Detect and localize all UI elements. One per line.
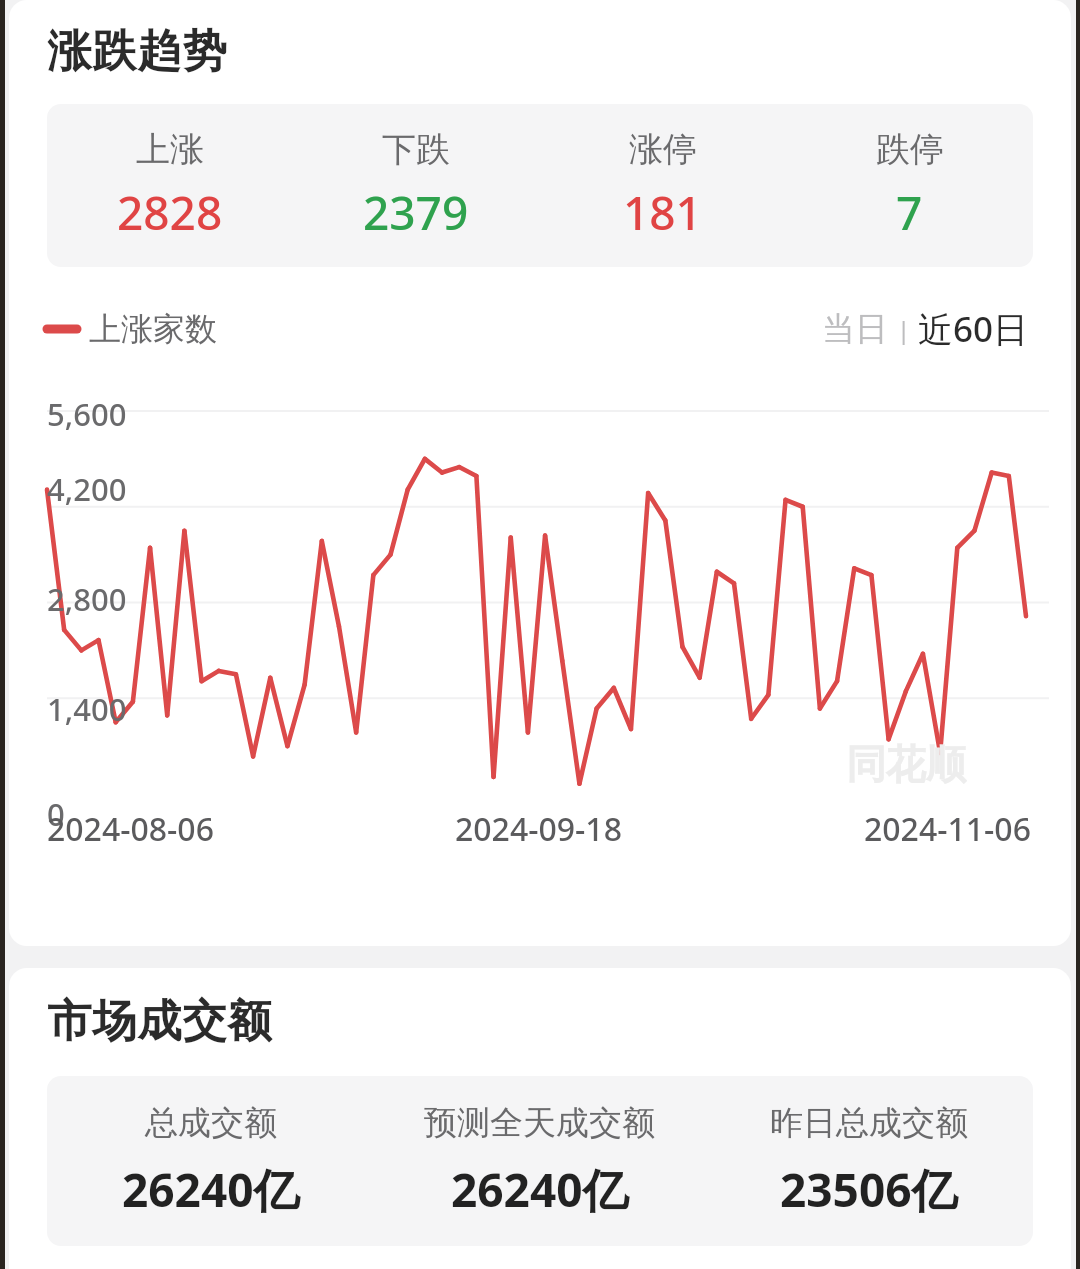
staticText: 涨跌趋势 [47,24,227,79]
staticText: 181 [623,181,702,244]
staticText: 1,400 [47,688,127,730]
staticText: 上涨家数 [89,309,217,349]
button[interactable]: 下跌 [293,104,539,267]
button[interactable]: 昨日总成交额 [704,1076,1033,1246]
staticText: 2379 [363,181,469,244]
staticText: 2,800 [47,578,127,620]
staticText: 市场成交额 [47,994,272,1049]
staticText: 预测全天成交额 [424,1102,655,1144]
staticText: 上涨 [136,128,204,171]
staticText: 跌停 [876,128,944,171]
button[interactable]: 预测全天成交额 [375,1076,704,1246]
other: Legend colour [47,323,77,335]
staticText: 26240亿 [451,1158,629,1221]
staticText: 近60日 [918,305,1029,353]
button[interactable]: 跌停 [786,104,1033,267]
staticText: 2024-08-06 [47,807,214,851]
button[interactable]: 上涨 [47,104,293,267]
staticText: 下跌 [382,128,450,171]
staticText: 26240亿 [122,1158,300,1221]
staticText: 当日 [822,308,888,350]
staticText: 2024-09-18 [455,807,622,851]
staticText: 4,200 [47,468,127,510]
button[interactable]: 当日 [816,304,894,354]
button[interactable]: 涨停 [539,104,786,267]
button[interactable]: 总成交额 [47,1076,375,1246]
staticText: 0 [47,793,65,835]
staticText: 同花顺 [846,739,966,789]
staticText: 涨停 [629,128,697,171]
staticText: | [897,313,911,346]
staticText: 2024-11-06 [864,807,1031,851]
staticText: 昨日总成交额 [770,1102,968,1144]
staticText: 7 [896,181,923,244]
staticText: 23506亿 [780,1158,958,1221]
staticText: 总成交额 [145,1102,277,1144]
staticText: 2828 [117,181,223,244]
button[interactable]: 近60日 [914,301,1033,357]
staticText: 5,600 [47,393,127,435]
